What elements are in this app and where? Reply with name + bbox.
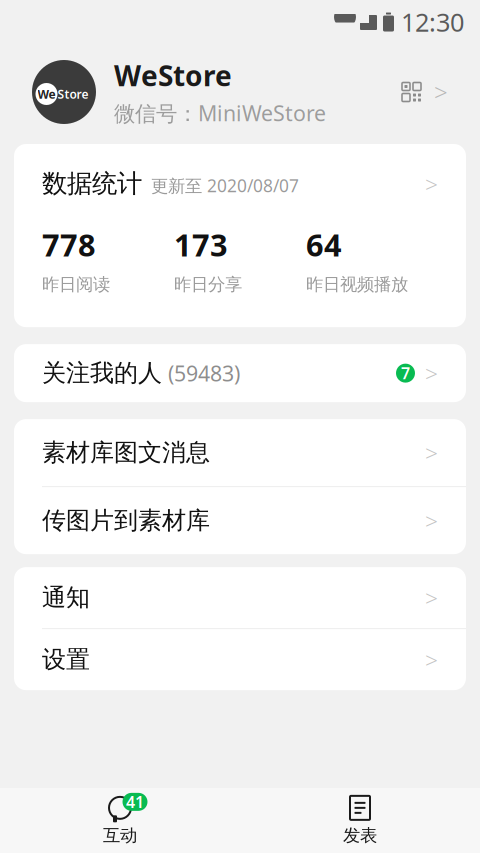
staticText: >: [434, 76, 448, 108]
staticText: 更新至 2020/08/07: [151, 174, 299, 197]
staticText: >: [425, 506, 438, 536]
staticText: 昨日视频播放: [306, 274, 408, 295]
button[interactable]: 通知: [14, 567, 466, 628]
staticText: >: [425, 583, 438, 613]
button[interactable]: 41: [0, 785, 240, 853]
staticText: 关注我的人: [42, 358, 162, 388]
staticText: 数据统计: [42, 168, 142, 199]
staticText: >: [425, 438, 438, 468]
staticText: 7: [401, 362, 410, 384]
button[interactable]: 设置: [14, 629, 466, 690]
staticText: 41: [126, 791, 144, 812]
button[interactable]: 关注我的人: [14, 344, 466, 402]
button[interactable]: We: [0, 44, 480, 140]
staticText: (59483): [168, 359, 240, 387]
staticText: >: [425, 169, 438, 199]
staticText: 778: [42, 224, 96, 265]
staticText: 素材库图文消息: [42, 438, 210, 467]
staticText: >: [425, 358, 438, 388]
staticText: 发表: [343, 825, 377, 846]
button[interactable]: 发表: [240, 785, 480, 853]
staticText: 设置: [42, 645, 90, 674]
staticText: >: [425, 645, 438, 675]
staticText: We: [37, 86, 55, 102]
staticText: 互动: [103, 825, 137, 846]
staticText: 传图片到素材库: [42, 506, 210, 535]
staticText: 微信号：MiniWeStore: [114, 99, 326, 127]
staticText: 12:30: [401, 5, 464, 39]
staticText: 昨日阅读: [42, 274, 110, 295]
staticText: Store: [57, 86, 88, 102]
button[interactable]: 传图片到素材库: [14, 487, 466, 554]
staticText: 昨日分享: [174, 274, 242, 295]
staticText: 64: [306, 224, 342, 265]
button[interactable]: 素材库图文消息: [14, 419, 466, 486]
staticText: 通知: [42, 583, 90, 612]
staticText: 173: [174, 224, 228, 265]
staticText: WeStore: [114, 57, 232, 94]
button[interactable]: 数据统计: [14, 144, 466, 327]
